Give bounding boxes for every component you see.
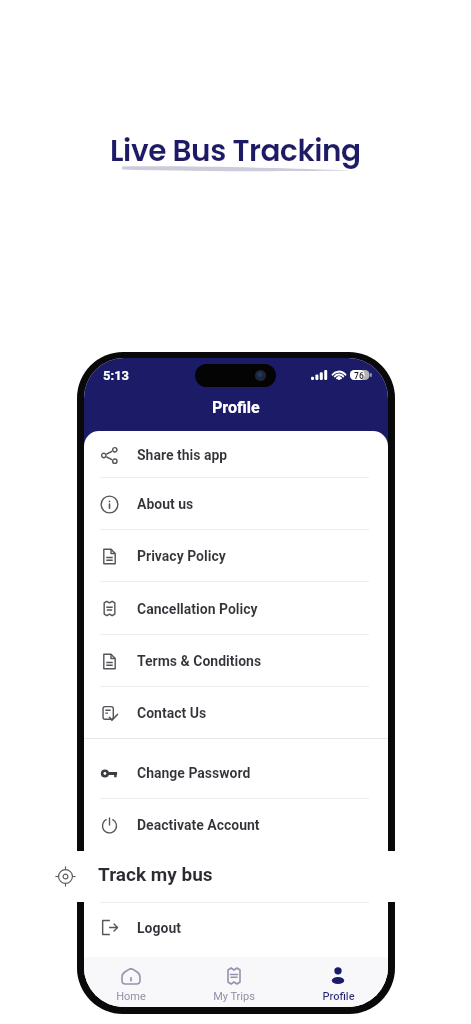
button[interactable]: Track my bus (0, 851, 471, 902)
staticText: 76 (354, 371, 364, 381)
button[interactable]: Terms & Conditions (84, 634, 388, 686)
staticText: Home (116, 990, 146, 1003)
staticText: Share this app (137, 447, 228, 463)
staticText: Change Password (137, 765, 251, 781)
button[interactable]: Share this app (84, 431, 388, 477)
staticText: Cancellation Policy (137, 601, 258, 617)
staticText: 5:13 (103, 368, 130, 383)
button[interactable]: Profile (286, 957, 388, 1007)
button[interactable]: Logout (84, 902, 388, 951)
button[interactable]: About us (84, 477, 388, 529)
staticText: Privacy Policy (137, 548, 226, 564)
staticText: About us (137, 496, 194, 512)
staticText: Deactivate Account (137, 817, 260, 833)
staticText: Profile (322, 990, 355, 1003)
staticText: Logout (137, 920, 181, 936)
button[interactable]: Cancellation Policy (84, 581, 388, 634)
staticText: Terms & Conditions (137, 653, 262, 669)
button[interactable]: Privacy Policy (84, 529, 388, 581)
button[interactable]: My Trips (182, 957, 286, 1007)
button[interactable]: Home (84, 957, 183, 1007)
staticText: My Trips (213, 990, 255, 1003)
staticText: Track my bus (98, 863, 213, 885)
staticText: Contact Us (137, 705, 207, 721)
staticText: Live Bus Tracking (110, 130, 361, 171)
other: Track my bus (55, 866, 76, 887)
staticText: Profile (212, 398, 260, 416)
button[interactable]: Deactivate Account (84, 798, 388, 850)
button[interactable]: Change Password (84, 746, 388, 798)
button[interactable]: Contact Us (84, 686, 388, 738)
